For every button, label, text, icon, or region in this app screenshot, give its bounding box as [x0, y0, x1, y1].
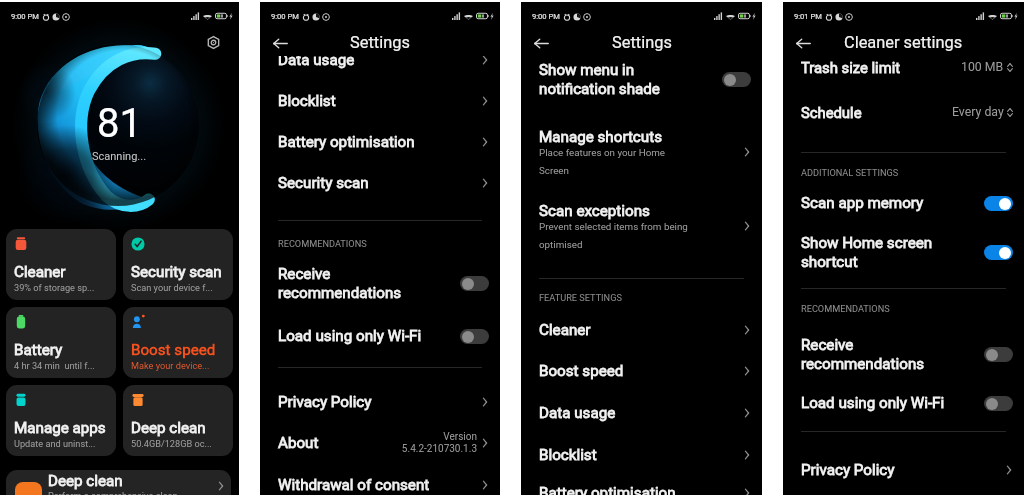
- button[interactable]: Privacy Policy: [783, 455, 1024, 485]
- button[interactable]: Receive recommendations: [783, 335, 1024, 373]
- staticText: Scan exceptions: [539, 202, 650, 220]
- staticText: 39% of storage sp...: [14, 282, 95, 293]
- button[interactable]: Boost speed: [521, 356, 762, 386]
- staticText: 4 hr 34 min until f...: [14, 360, 95, 371]
- staticText: Deep clean: [48, 472, 123, 490]
- staticText: Deep clean: [131, 419, 206, 437]
- button[interactable]: Deep clean: [6, 470, 231, 495]
- button[interactable]: Data usage: [521, 398, 762, 428]
- staticText: ADDITIONAL SETTINGS: [801, 167, 899, 178]
- button[interactable]: Security scan: [260, 168, 500, 198]
- staticText: RECOMMENDATIONS: [801, 303, 890, 314]
- staticText: Place features on your Home Screen: [539, 147, 666, 176]
- button[interactable]: Battery optimisation: [521, 478, 762, 495]
- staticText: Trash size limit: [801, 59, 901, 76]
- staticText: Load using only Wi-Fi: [278, 327, 422, 345]
- button[interactable]: Toggle: [460, 329, 489, 344]
- button[interactable]: Battery optimisation: [260, 127, 500, 157]
- staticText: Blocklist: [278, 92, 336, 110]
- staticText: Scan app memory: [801, 194, 924, 212]
- staticText: Withdrawal of consent: [278, 476, 430, 494]
- button[interactable]: Manage apps: [6, 385, 116, 456]
- staticText: 9:00 PM: [532, 12, 560, 21]
- staticText: Scanning...: [92, 150, 147, 163]
- button[interactable]: Scan exceptions: [521, 198, 762, 254]
- button[interactable]: Manage shortcuts: [521, 124, 762, 180]
- staticText: Update and uninst...: [14, 438, 96, 449]
- staticText: Settings: [612, 33, 672, 52]
- staticText: Every day: [952, 105, 1004, 119]
- staticText: Manage apps: [14, 419, 106, 437]
- staticText: FEATURE SETTINGS: [539, 292, 622, 303]
- staticText: RECOMMENDATIONS: [278, 238, 367, 249]
- staticText: Cleaner settings: [844, 33, 963, 52]
- button[interactable]: Load using only Wi-Fi: [260, 321, 500, 351]
- staticText: Privacy Policy: [801, 461, 895, 479]
- button[interactable]: Back: [270, 33, 290, 53]
- button[interactable]: Show menu in notification shade: [521, 61, 762, 97]
- staticText: Version: [443, 431, 477, 443]
- button[interactable]: Privacy Policy: [260, 387, 500, 417]
- staticText: Privacy Policy: [278, 393, 372, 411]
- staticText: 50.4GB/128GB oc...: [131, 438, 212, 449]
- button[interactable]: Back: [793, 33, 813, 53]
- staticText: Show menu in notification shade: [539, 61, 660, 97]
- staticText: Data usage: [278, 51, 355, 69]
- button[interactable]: Blocklist: [521, 440, 762, 470]
- staticText: Receive recommendations: [801, 336, 925, 373]
- staticText: About: [278, 434, 319, 452]
- button[interactable]: Back: [531, 33, 551, 53]
- staticText: Battery: [14, 341, 63, 359]
- staticText: Battery optimisation: [539, 484, 676, 495]
- staticText: Make your device...: [131, 360, 210, 371]
- button[interactable]: Show Home screen shortcut: [783, 233, 1024, 271]
- staticText: Boost speed: [539, 362, 624, 380]
- staticText: Data usage: [539, 404, 616, 422]
- button[interactable]: Battery: [6, 307, 116, 378]
- staticText: Receive recommendations: [278, 265, 402, 302]
- button[interactable]: Deep clean: [123, 385, 233, 456]
- staticText: Blocklist: [539, 446, 597, 464]
- staticText: Show Home screen shortcut: [801, 234, 933, 271]
- button[interactable]: Blocklist: [260, 86, 500, 116]
- staticText: Load using only Wi-Fi: [801, 394, 945, 412]
- staticText: Scan your device f...: [131, 282, 213, 293]
- button[interactable]: Data usage: [260, 45, 500, 75]
- button[interactable]: Load using only Wi-Fi: [783, 388, 1024, 418]
- staticText: Settings: [350, 33, 410, 52]
- button[interactable]: Schedule: [783, 97, 1024, 127]
- button[interactable]: Cleaner: [6, 229, 116, 300]
- button[interactable]: Toggle: [984, 396, 1013, 411]
- staticText: 5.4.2-210730.1.3: [401, 443, 477, 455]
- staticText: Boost speed: [131, 341, 216, 359]
- button[interactable]: About: [260, 427, 500, 459]
- button[interactable]: Settings: [204, 33, 222, 51]
- button[interactable]: Withdrawal of consent: [260, 470, 500, 495]
- button[interactable]: Receive recommendations: [260, 264, 500, 302]
- staticText: Perform a comprehensive clean: [48, 490, 178, 495]
- staticText: 100 MB: [961, 60, 1004, 74]
- staticText: Battery optimisation: [278, 133, 415, 151]
- staticText: 81: [97, 100, 142, 147]
- staticText: Cleaner: [539, 321, 591, 339]
- button[interactable]: Security scan: [123, 229, 233, 300]
- staticText: Cleaner: [14, 263, 66, 281]
- button[interactable]: Toggle: [722, 72, 751, 87]
- staticText: Schedule: [801, 104, 862, 121]
- staticText: 9:00 PM: [271, 12, 299, 21]
- staticText: 9:00 PM: [11, 12, 39, 21]
- button[interactable]: Boost speed: [123, 307, 233, 378]
- button[interactable]: Toggle: [984, 245, 1013, 260]
- button[interactable]: Trash size limit: [783, 52, 1024, 82]
- staticText: 9:01 PM: [794, 12, 822, 21]
- button[interactable]: Toggle: [984, 347, 1013, 362]
- button[interactable]: Toggle: [460, 276, 489, 291]
- button[interactable]: Toggle: [984, 196, 1013, 211]
- button[interactable]: Cleaner: [521, 315, 762, 345]
- button[interactable]: Scan app memory: [783, 188, 1024, 218]
- staticText: Security scan: [131, 263, 222, 281]
- staticText: Security scan: [278, 174, 369, 192]
- staticText: Prevent selected items from being optimi…: [539, 221, 688, 250]
- staticText: Manage shortcuts: [539, 128, 662, 146]
